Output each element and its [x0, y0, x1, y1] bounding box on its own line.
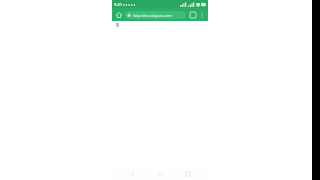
- button[interactable]: Tabs: [188, 10, 197, 19]
- staticText: https://m.adsjssss.com: [133, 13, 172, 18]
- button[interactable]: https://m.adsjssss.com: [125, 11, 186, 19]
- button[interactable]: Recent apps: [180, 168, 196, 180]
- button[interactable]: More options: [197, 10, 206, 19]
- button[interactable]: Home: [114, 10, 123, 19]
- staticText: 9:41: [114, 2, 122, 7]
- button[interactable]: Back: [124, 168, 140, 180]
